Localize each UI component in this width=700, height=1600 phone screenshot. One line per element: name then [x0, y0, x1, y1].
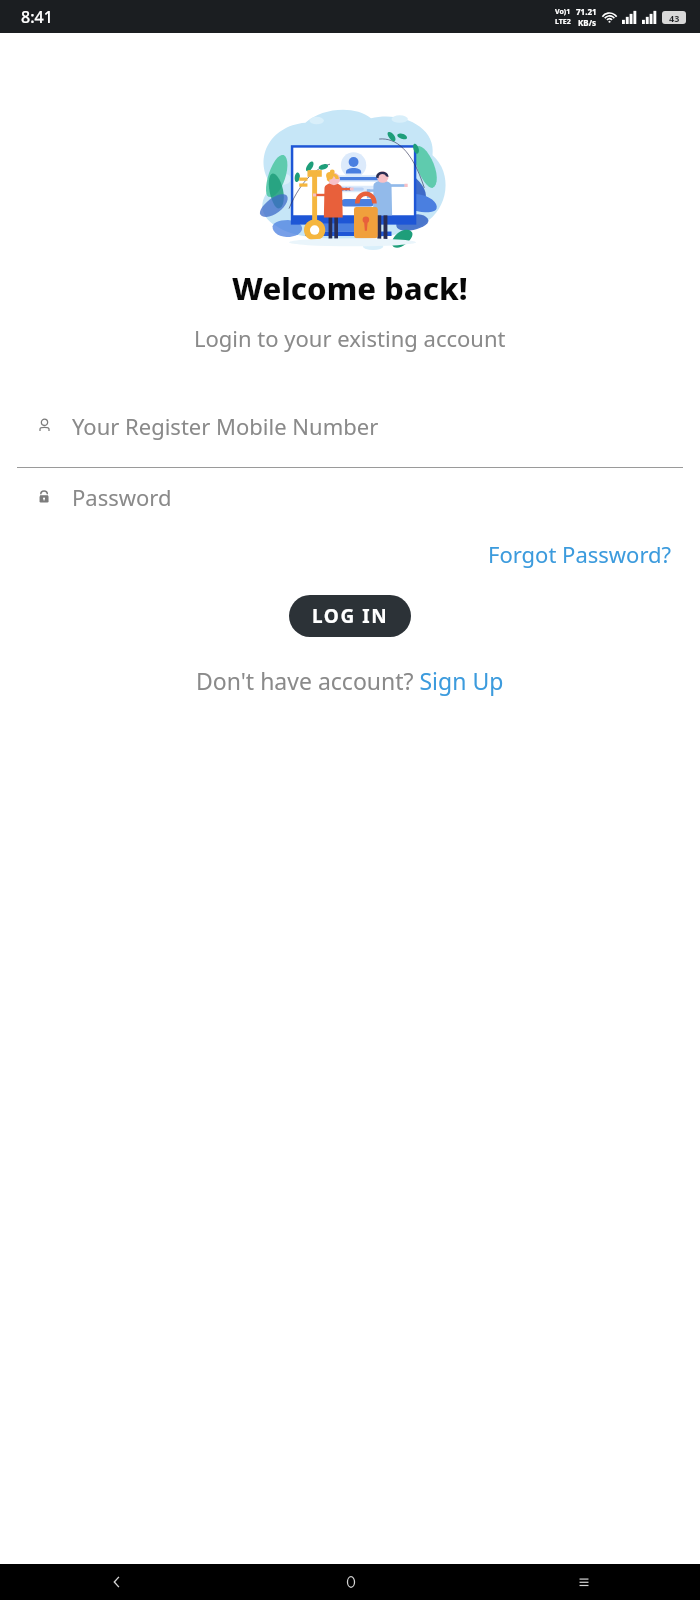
staticText: Welcome back! — [232, 267, 468, 309]
staticText: Vo)1 — [555, 7, 571, 17]
staticText: 71.21 — [576, 6, 597, 17]
staticText: Your Register Mobile Number — [72, 411, 379, 441]
button[interactable]: Back — [0, 1564, 234, 1600]
button[interactable]: Recent apps — [467, 1564, 700, 1600]
button[interactable]: Password — [16, 476, 684, 517]
staticText: Forgot Password? — [488, 539, 672, 569]
staticText: 8:41 — [21, 6, 53, 28]
staticText: KB/s — [578, 17, 596, 28]
staticText: LTE2 — [555, 17, 571, 27]
staticText: Don't have account? Sign Up — [196, 665, 504, 696]
staticText: Password — [72, 482, 172, 512]
staticText: LOG IN — [312, 603, 389, 629]
button[interactable]: LOG IN — [289, 595, 411, 637]
staticText: Login to your existing account — [194, 323, 506, 353]
button[interactable]: Forgot Password? — [484, 535, 676, 573]
button[interactable]: Home — [234, 1564, 467, 1600]
button[interactable]: Don't have account? Sign Up — [192, 661, 508, 700]
staticText: 43 — [669, 12, 680, 24]
button[interactable]: Your Register Mobile Number — [16, 405, 684, 446]
